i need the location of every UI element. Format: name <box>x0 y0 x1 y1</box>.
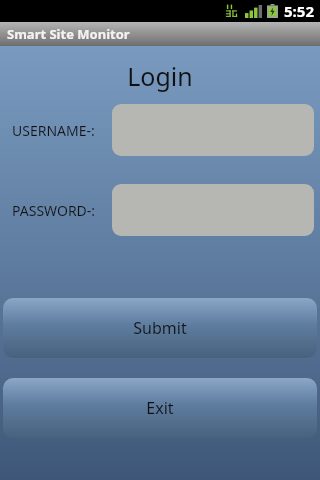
staticText: PASSWORD-: <box>12 201 96 220</box>
button[interactable]: Submit <box>3 298 317 358</box>
staticText: USERNAME-: <box>12 121 95 140</box>
staticText: Submit <box>133 317 187 339</box>
staticText: 5:52 <box>284 1 314 21</box>
button[interactable] <box>112 104 314 156</box>
staticText: Login <box>127 59 193 93</box>
staticText: Smart Site Monitor <box>7 25 130 43</box>
button[interactable]: Exit <box>3 378 317 438</box>
staticText: Exit <box>146 397 174 419</box>
button[interactable] <box>112 184 314 236</box>
